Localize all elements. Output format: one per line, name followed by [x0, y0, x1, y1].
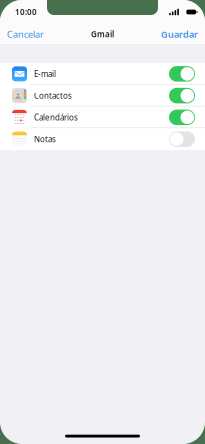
staticText: Calendários — [34, 112, 78, 123]
staticText: Notas — [34, 134, 56, 144]
button[interactable]: Calendários — [0, 106, 205, 128]
staticText: Gmail — [91, 29, 114, 39]
staticText: E-mail — [34, 69, 56, 79]
staticText: 10:00 — [15, 7, 37, 17]
button[interactable]: E-mail — [0, 63, 205, 85]
staticText: Guardar — [161, 28, 198, 40]
button[interactable]: Cancelar — [0, 23, 48, 45]
staticText: Cancelar — [7, 28, 44, 40]
button[interactable]: Guardar — [157, 23, 205, 45]
staticText: Contactos — [34, 90, 72, 101]
button[interactable]: Notas — [0, 128, 205, 150]
button[interactable]: Contactos — [0, 85, 205, 107]
